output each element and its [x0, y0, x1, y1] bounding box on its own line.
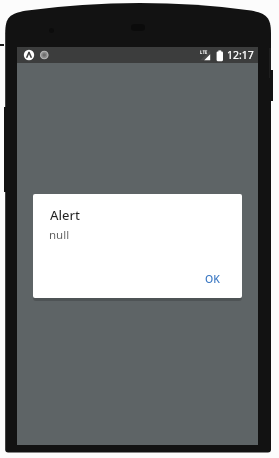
staticText: null: [49, 227, 70, 243]
staticText: OK: [205, 272, 220, 286]
staticText: Alert: [50, 206, 80, 224]
staticText: 12:17: [227, 48, 254, 62]
button[interactable]: OK: [197, 267, 228, 291]
